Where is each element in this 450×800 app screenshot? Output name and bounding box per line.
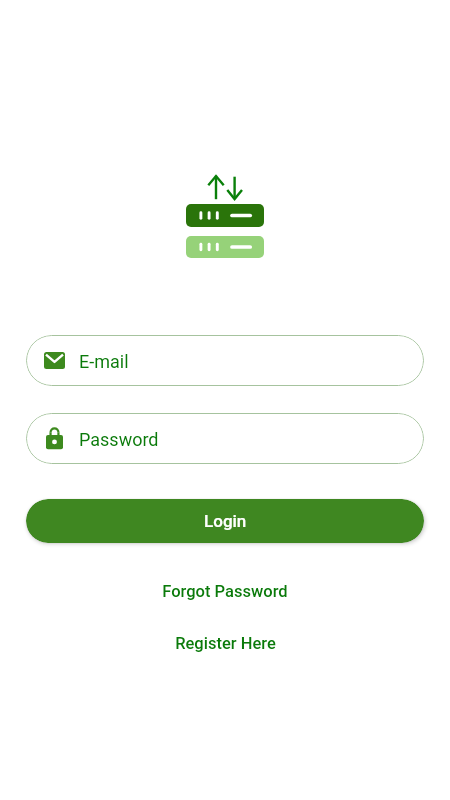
button[interactable]: Password — [26, 413, 424, 464]
button[interactable]: E-mail — [26, 335, 424, 386]
button[interactable]: Login — [26, 499, 424, 543]
button[interactable]: Forgot Password — [152, 579, 298, 604]
staticText: Login — [204, 511, 247, 531]
staticText: Password — [79, 429, 159, 450]
other: App logo — [186, 172, 264, 258]
button[interactable]: Register Here — [165, 631, 286, 656]
staticText: E-mail — [79, 351, 129, 372]
